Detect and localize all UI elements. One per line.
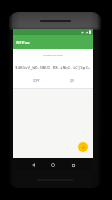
button[interactable]: COPY (31, 78, 42, 83)
button[interactable]: QR (68, 78, 76, 83)
button[interactable]: Back (29, 161, 37, 169)
button[interactable]: Home (49, 161, 57, 169)
staticText: COPY (33, 79, 40, 82)
staticText: WiFiPass (16, 40, 30, 44)
button[interactable]: Recents (69, 161, 77, 169)
staticText: $4KGvV_WD-NBUI.R8-iNbI.iC]Sp3+ (15, 65, 91, 71)
staticText: QR (70, 79, 74, 82)
staticText: Password for Smalls (43, 54, 63, 57)
button[interactable]: Add network (78, 142, 88, 152)
